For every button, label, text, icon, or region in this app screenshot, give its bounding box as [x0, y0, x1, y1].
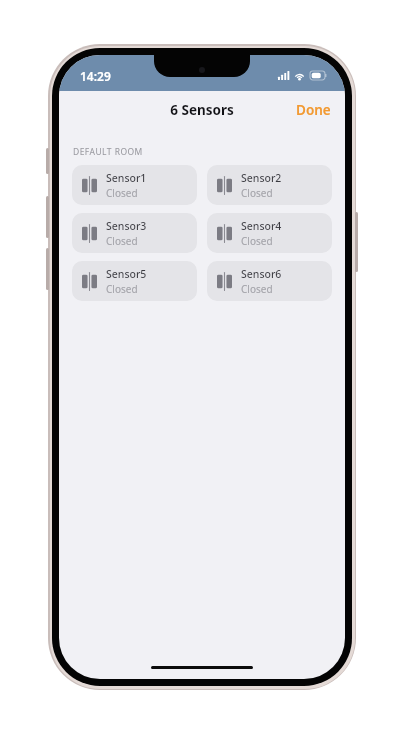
staticText: DEFAULT ROOM: [73, 146, 143, 158]
button[interactable]: Sensor1: [72, 165, 197, 205]
staticText: 6 Sensors: [170, 101, 234, 119]
staticText: Closed: [106, 282, 138, 296]
button[interactable]: Sensor5: [72, 261, 197, 301]
staticText: Done: [296, 101, 331, 119]
staticText: Closed: [241, 234, 273, 248]
staticText: Sensor3: [106, 219, 147, 233]
staticText: Closed: [241, 282, 273, 296]
staticText: Closed: [106, 186, 138, 200]
staticText: Sensor1: [106, 171, 147, 185]
staticText: Sensor5: [106, 267, 147, 281]
staticText: 14:29: [80, 68, 111, 84]
staticText: Closed: [241, 186, 273, 200]
staticText: Sensor4: [241, 219, 282, 233]
staticText: Sensor6: [241, 267, 282, 281]
button[interactable]: Done: [282, 93, 345, 127]
button[interactable]: Sensor3: [72, 213, 197, 253]
staticText: Closed: [106, 234, 138, 248]
button[interactable]: Sensor4: [207, 213, 332, 253]
staticText: Sensor2: [241, 171, 282, 185]
button[interactable]: Sensor2: [207, 165, 332, 205]
button[interactable]: Sensor6: [207, 261, 332, 301]
